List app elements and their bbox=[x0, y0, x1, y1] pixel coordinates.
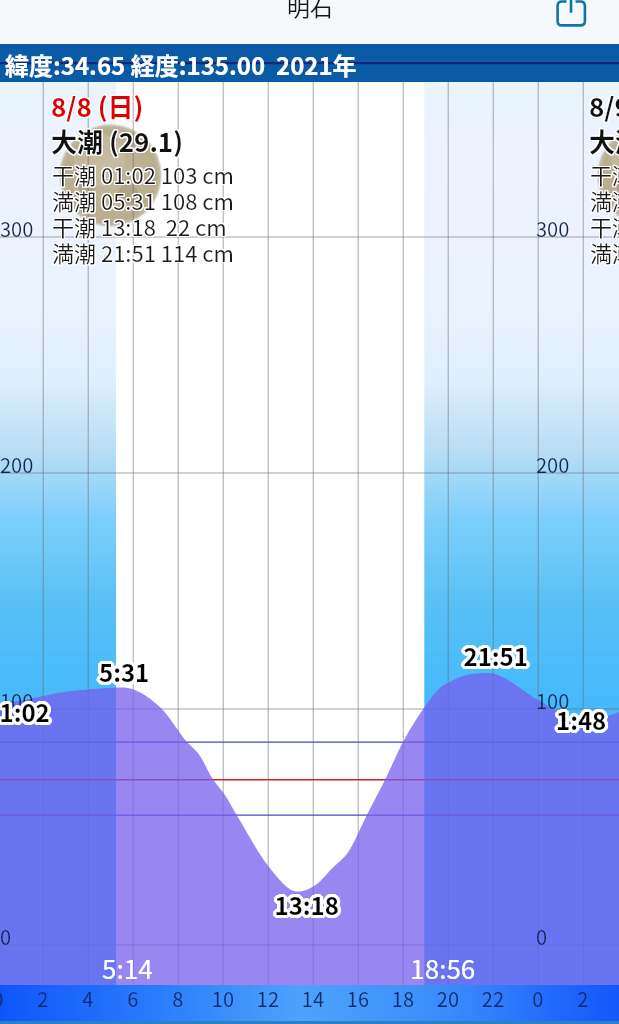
staticText: 緯度:34.65 経度:135.00 2021年 bbox=[5, 47, 357, 82]
staticText: 明石 bbox=[287, 0, 333, 22]
button[interactable]: Share bbox=[549, 0, 593, 36]
button[interactable]: 緯度:34.65 経度:135.00 2021年 bbox=[0, 44, 619, 82]
